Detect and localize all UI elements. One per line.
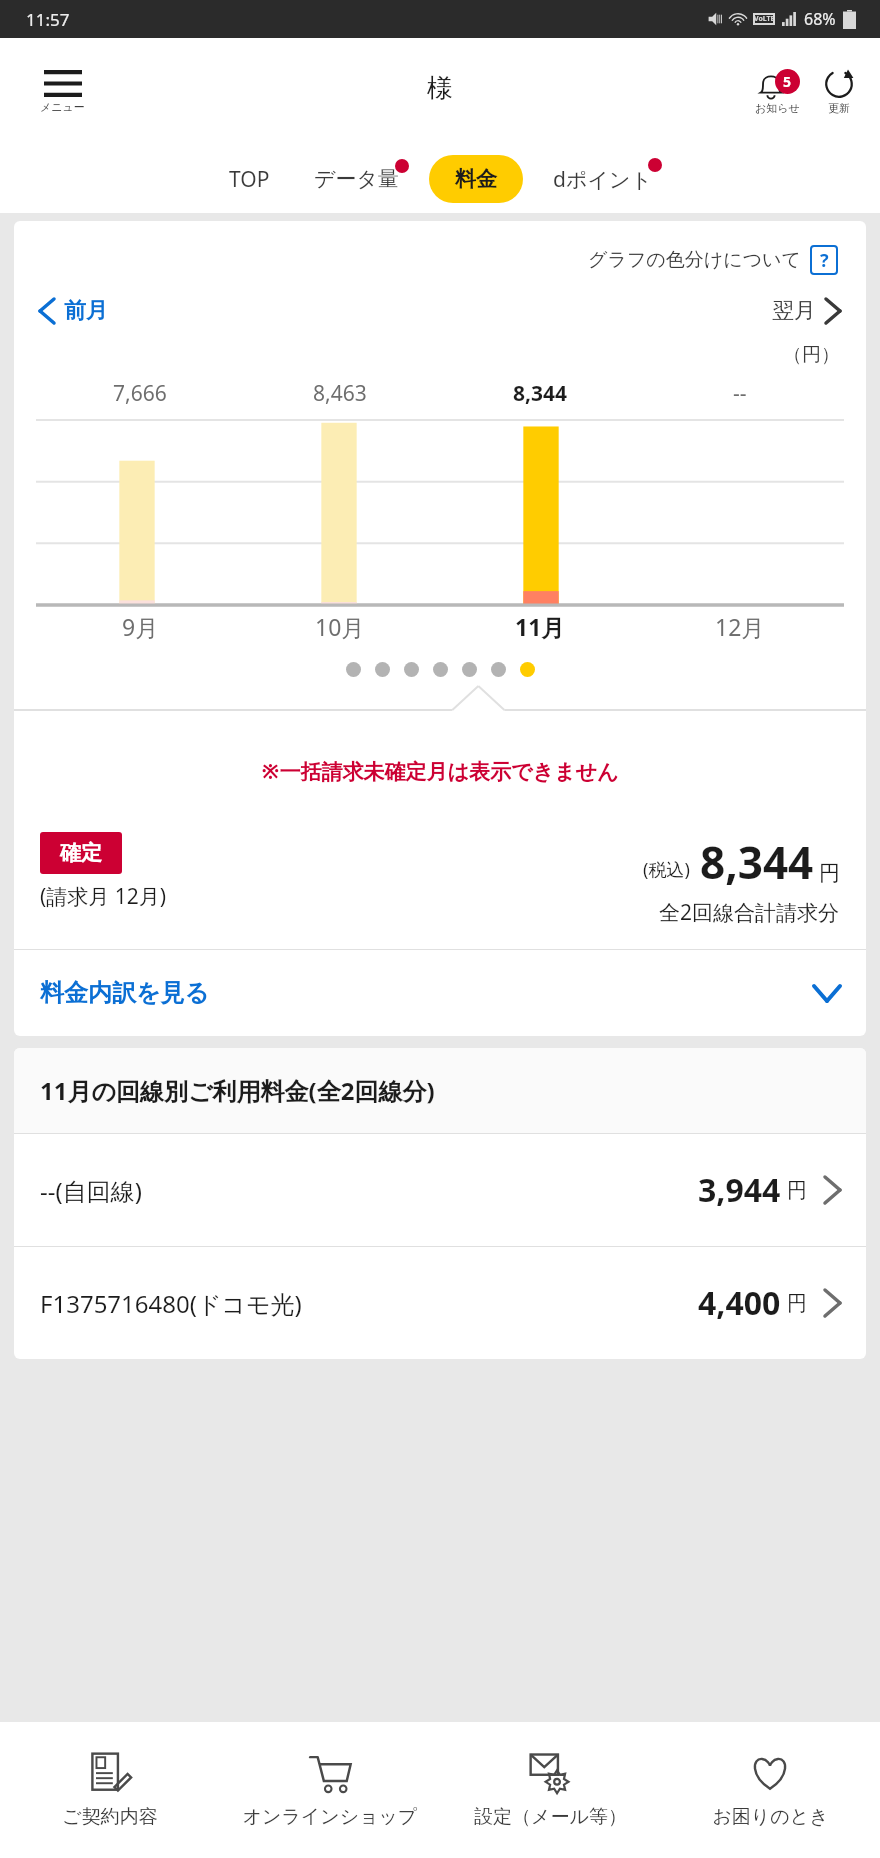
button[interactable]: ご契約内容	[0, 1722, 220, 1858]
staticText: (請求月 12月)	[40, 882, 167, 911]
button[interactable]: データ量	[310, 155, 403, 203]
button[interactable]: 設定（メール等）	[440, 1722, 660, 1858]
button[interactable]: 前月	[36, 293, 112, 329]
staticText: 3,944	[698, 1168, 781, 1212]
button[interactable]: TOP	[225, 154, 274, 205]
staticText: 10月	[315, 611, 365, 642]
staticText: 全2回線合計請求分	[659, 898, 840, 927]
staticText: VoLTE	[754, 14, 775, 24]
staticText: オンラインショップ	[242, 1805, 418, 1829]
button[interactable]: グラフの色分けについて	[584, 241, 842, 279]
button[interactable]: 料金	[429, 155, 523, 203]
staticText: --(自回線)	[40, 1174, 142, 1207]
staticText: 8,344	[700, 832, 814, 892]
staticText: F1375716480(ドコモ光)	[40, 1287, 302, 1320]
staticText: 料金内訳を見る	[40, 978, 210, 1008]
staticText: 円	[787, 1291, 807, 1316]
staticText: 確定	[60, 840, 102, 866]
staticText: 8,463	[313, 379, 367, 408]
staticText: 7,666	[113, 379, 167, 408]
staticText: ご契約内容	[62, 1805, 158, 1829]
button[interactable]: 更新	[820, 69, 858, 115]
staticText: 4,400	[698, 1281, 781, 1325]
button[interactable]: 翌月	[768, 293, 844, 329]
button[interactable]: メニュー	[34, 66, 91, 118]
staticText: 9月	[122, 611, 159, 642]
button[interactable]: お困りのとき	[660, 1722, 880, 1858]
staticText: TOP	[229, 165, 270, 194]
staticText: (税込)	[643, 857, 690, 882]
button[interactable]: F1375716480(ドコモ光)	[14, 1247, 866, 1359]
staticText: 円	[819, 860, 840, 886]
staticText: お知らせ	[755, 101, 800, 115]
staticText: ※一括請求未確定月は表示できません	[14, 757, 866, 786]
staticText: --	[733, 379, 747, 408]
staticText: 円	[787, 1178, 807, 1203]
staticText: （円）	[783, 343, 840, 367]
staticText: 11:57	[26, 8, 70, 31]
staticText: データ量	[314, 166, 399, 192]
staticText: 料金	[455, 166, 497, 192]
staticText: 更新	[828, 101, 850, 115]
button[interactable]: オンラインショップ	[220, 1722, 440, 1858]
staticText: 設定（メール等）	[474, 1805, 627, 1829]
button[interactable]: --(自回線)	[14, 1134, 866, 1246]
staticText: 5	[783, 72, 792, 91]
staticText: 翌月	[772, 297, 816, 325]
staticText: 8,344	[513, 379, 568, 408]
staticText: お困りのとき	[712, 1805, 829, 1829]
button[interactable]: dポイント	[549, 154, 656, 205]
staticText: 12月	[715, 611, 765, 642]
button[interactable]: 料金内訳を見る	[14, 950, 866, 1036]
button[interactable]: お知らせ	[751, 69, 804, 115]
staticText: 前月	[64, 297, 108, 325]
staticText: dポイント	[553, 165, 652, 194]
staticText: 68%	[804, 8, 836, 30]
staticText: ?	[820, 248, 829, 273]
staticText: 11月	[515, 611, 565, 642]
staticText: 11月の回線別ご利用料金(全2回線分)	[40, 1074, 435, 1107]
staticText: 様	[427, 72, 453, 105]
staticText: メニュー	[40, 100, 85, 114]
staticText: グラフの色分けについて	[588, 248, 802, 272]
